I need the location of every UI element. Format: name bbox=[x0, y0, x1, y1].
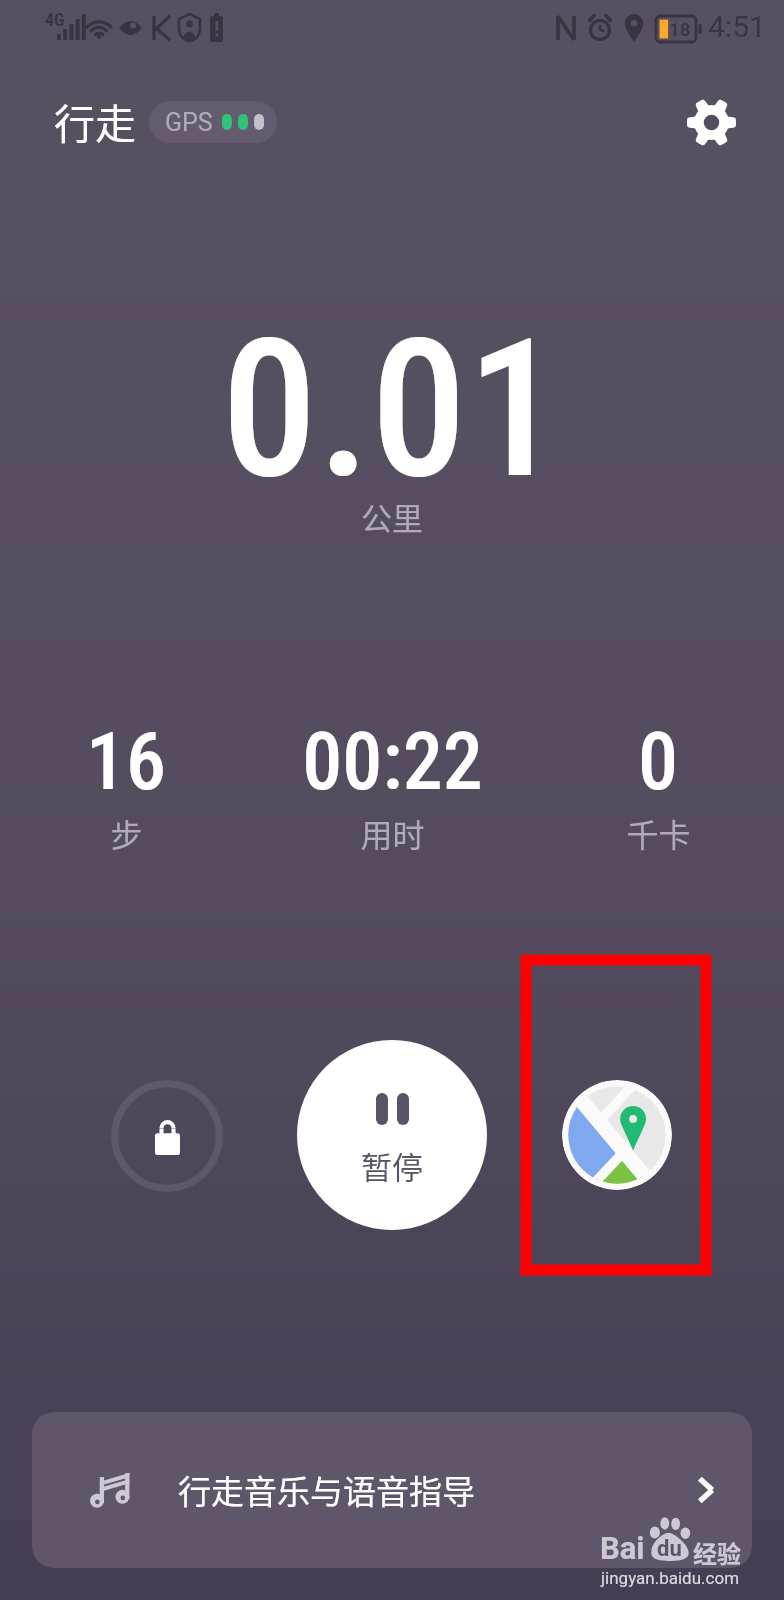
button[interactable]: Settings bbox=[677, 88, 746, 157]
staticText: 0 bbox=[638, 715, 678, 809]
staticText: 00:22 bbox=[302, 715, 483, 809]
staticText: 行走音乐与语音指导 bbox=[178, 1466, 475, 1514]
button[interactable]: GPS bbox=[149, 101, 277, 143]
staticText: 经验 bbox=[693, 1535, 741, 1570]
staticText: GPS bbox=[165, 108, 213, 137]
staticText: 0.01 bbox=[221, 297, 563, 522]
button[interactable]: 暂停 bbox=[297, 1040, 487, 1230]
staticText: du bbox=[657, 1536, 682, 1562]
staticText: 4G bbox=[45, 9, 65, 30]
button[interactable]: 行走音乐与语音指导 bbox=[32, 1412, 752, 1568]
button[interactable]: Map bbox=[562, 1080, 672, 1190]
staticText: 暂停 bbox=[361, 1143, 423, 1188]
staticText: 行走 bbox=[54, 91, 136, 150]
staticText: 公里 bbox=[361, 494, 423, 539]
staticText: 千卡 bbox=[626, 810, 691, 856]
staticText: Bai bbox=[600, 1530, 645, 1566]
staticText: 4:51 bbox=[708, 9, 766, 44]
staticText: 步 bbox=[110, 810, 143, 856]
staticText: jingyan.baidu.com bbox=[601, 1568, 740, 1588]
button[interactable]: Lock bbox=[111, 1080, 223, 1192]
staticText: 用时 bbox=[360, 810, 425, 856]
staticText: 16 bbox=[86, 715, 166, 809]
staticText: 18 bbox=[669, 18, 691, 40]
